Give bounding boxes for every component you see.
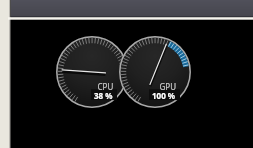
button[interactable] — [0, 0, 253, 148]
